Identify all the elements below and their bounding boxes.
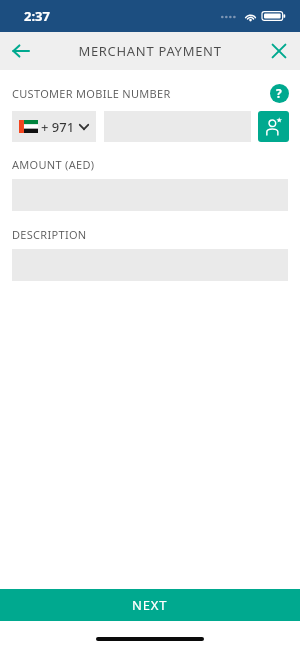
button[interactable]: Help xyxy=(269,83,289,103)
button[interactable]: + 971 xyxy=(12,111,96,142)
button[interactable]: Close xyxy=(258,32,300,70)
staticText: 2:37 xyxy=(24,7,50,25)
staticText: + 971 xyxy=(41,118,75,136)
button[interactable]: Back xyxy=(0,32,42,70)
staticText: AMOUNT (AED) xyxy=(12,157,95,172)
staticText: ? xyxy=(276,85,282,101)
staticText: NEXT xyxy=(132,596,168,614)
button[interactable]: NEXT xyxy=(0,589,300,621)
staticText: MERCHANT PAYMENT xyxy=(78,42,222,60)
staticText: DESCRIPTION xyxy=(12,227,87,242)
button[interactable]: Add contact xyxy=(258,111,289,142)
staticText: CUSTOMER MOBILE NUMBER xyxy=(12,86,171,101)
